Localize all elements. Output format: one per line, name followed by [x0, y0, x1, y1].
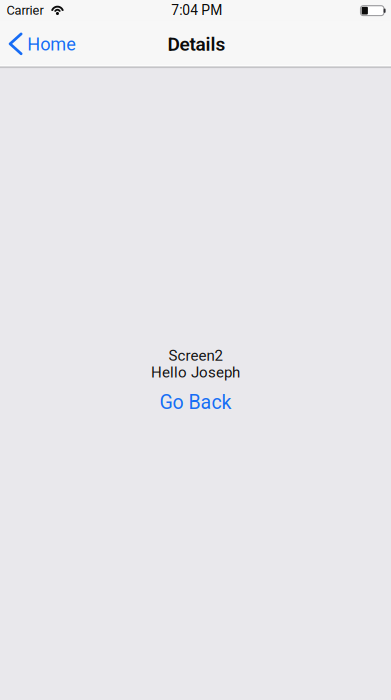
button[interactable]: Home [0, 22, 84, 68]
staticText: Go Back [159, 391, 231, 414]
staticText: Home [27, 34, 76, 55]
staticText: Hello Joseph [151, 363, 240, 381]
button[interactable]: Go Back [159, 381, 231, 413]
staticText: Details [167, 33, 225, 55]
staticText: Carrier [6, 3, 43, 18]
staticText: Screen2 [168, 347, 222, 364]
staticText: 7:04 PM [171, 2, 222, 18]
